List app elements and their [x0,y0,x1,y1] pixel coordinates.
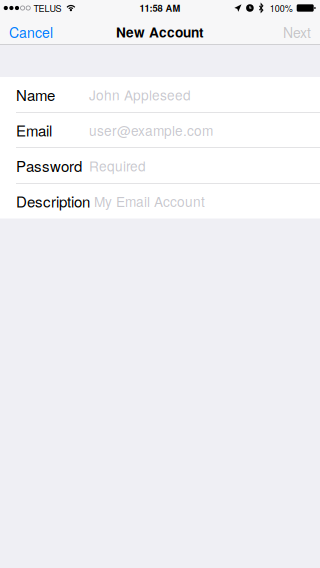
button[interactable]: Description [0,183,320,218]
staticText: John Appleseed [89,85,191,104]
staticText: New Account [116,22,204,42]
staticText: Password [16,155,82,176]
staticText: Description [16,190,90,212]
button[interactable]: Cancel [0,20,62,44]
button[interactable]: Email [0,112,320,147]
button[interactable]: Password [0,148,320,183]
staticText: Cancel [9,22,53,42]
staticText: Next [283,22,311,42]
staticText: Name [16,84,55,105]
staticText: Email [16,119,52,141]
button[interactable]: Next [274,20,320,44]
staticText: 100% [270,2,293,14]
staticText: 11:58 AM [139,1,180,15]
staticText: Required [89,156,146,175]
staticText: TELUS [33,2,61,14]
button[interactable]: Name [0,77,320,112]
staticText: My Email Account [94,191,205,211]
staticText: user@example.com [89,120,213,140]
